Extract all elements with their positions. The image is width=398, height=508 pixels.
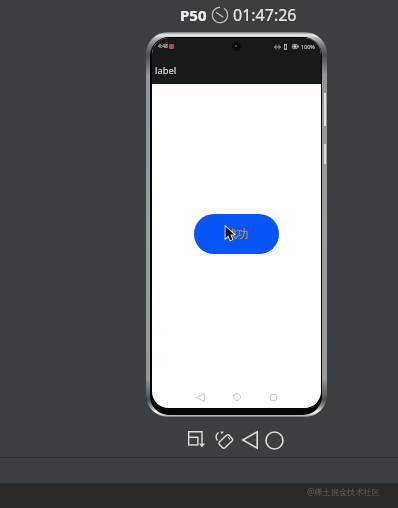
button[interactable]: Back — [239, 429, 261, 451]
staticText: @稀土掘金技术社区 — [307, 486, 380, 497]
staticText: 成功 — [225, 227, 249, 242]
button[interactable]: Screenshot — [186, 429, 208, 451]
button[interactable]: Home — [263, 429, 285, 451]
button[interactable]: Recents — [262, 386, 284, 408]
staticText: 4:48 — [158, 43, 168, 50]
button[interactable]: Rotate — [213, 429, 235, 451]
button[interactable]: Home — [226, 386, 248, 408]
button[interactable]: 成功 — [194, 214, 279, 254]
staticText: label — [155, 64, 177, 77]
staticText: 100% — [301, 43, 315, 50]
button[interactable]: Back — [189, 386, 211, 408]
staticText: 01:47:26 — [233, 4, 297, 26]
staticText: P50 — [180, 5, 207, 25]
